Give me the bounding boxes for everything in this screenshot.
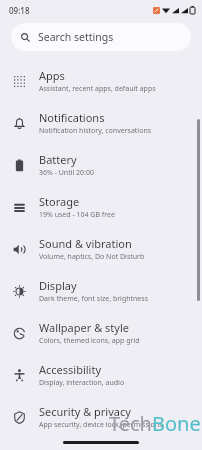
other: Apps <box>13 75 26 88</box>
staticText: 09:18 <box>9 5 30 16</box>
button[interactable]: Apps <box>0 60 202 102</box>
staticText: Storage <box>39 194 80 209</box>
button[interactable]: Storage <box>0 186 202 228</box>
staticText: Display, interaction, audio <box>39 378 125 388</box>
staticText: Search settings <box>38 30 114 44</box>
other: Display <box>13 285 26 298</box>
staticText: 36% - Until 20:00 <box>39 168 95 178</box>
staticText: App security, device lock, permissions <box>39 420 163 430</box>
staticText: Security & privacy <box>39 404 131 419</box>
staticText: Accessibility <box>39 362 102 377</box>
staticText: Notifications <box>39 110 105 125</box>
button[interactable]: Display <box>0 270 202 312</box>
button[interactable]: Search settings <box>11 23 191 51</box>
staticText: Battery <box>39 152 77 167</box>
other: Accessibility <box>13 369 26 382</box>
staticText: 19% used - 104 GB free <box>39 210 115 220</box>
staticText: Display <box>39 278 77 293</box>
button[interactable]: Notifications <box>0 102 202 144</box>
staticText: Colors, themed icons, app grid <box>39 336 140 346</box>
staticText: Volume, haptics, Do Not Disturb <box>39 252 145 262</box>
button[interactable]: Battery <box>0 144 202 186</box>
button[interactable]: Sound <box>0 228 202 270</box>
other: Wallpaper <box>13 327 26 340</box>
button[interactable]: Wallpaper <box>0 312 202 354</box>
button[interactable]: Accessibility <box>0 354 202 396</box>
staticText: Sound & vibration <box>39 236 132 251</box>
other: Security <box>13 411 26 424</box>
other: Sound <box>13 243 26 256</box>
staticText: Notification history, conversations <box>39 126 152 136</box>
button[interactable]: Security <box>0 396 202 438</box>
other: Notifications <box>13 117 26 130</box>
staticText: Assistant, recent apps, default apps <box>39 84 156 94</box>
staticText: Bone <box>152 410 201 437</box>
other: Battery <box>13 159 26 172</box>
staticText: Wallpaper & style <box>39 320 129 335</box>
staticText: Dark theme, font size, brightness <box>39 294 149 304</box>
other: Storage <box>13 201 26 214</box>
staticText: Tech <box>109 410 152 437</box>
staticText: Apps <box>39 68 65 83</box>
